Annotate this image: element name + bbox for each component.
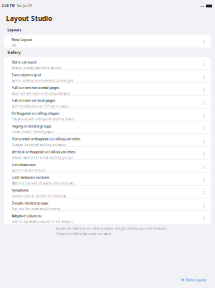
staticText: New Layout	[186, 278, 206, 282]
button[interactable]: Deeply nested groups	[4, 198, 211, 211]
staticText: 4:38 PM	[2, 4, 15, 8]
staticText: Start	[11, 44, 16, 47]
staticText: Xylophone	[11, 187, 28, 193]
staticText: Gallery	[7, 50, 20, 55]
button[interactable]: Paging in nested groups	[4, 121, 211, 134]
button[interactable]: Adaptive columns	[4, 211, 211, 224]
staticText: Create nested, friendly pages	[11, 130, 53, 134]
button[interactable]: Two column grid	[4, 70, 211, 83]
staticText: Adaptive columns	[11, 213, 41, 218]
button[interactable]: Xylophone	[4, 185, 211, 198]
staticText: Deeply nested groups	[11, 200, 48, 206]
staticText: Discover upbeat, colorful cells that pla…	[11, 194, 65, 198]
staticText: Swipe left and right in this popular lay…	[11, 92, 70, 95]
staticText: Explore lists and sections	[11, 169, 45, 172]
button[interactable]: Full screen vertical pages	[4, 96, 211, 108]
staticText: Story carousel	[11, 59, 36, 65]
staticText: Lists between sections	[11, 175, 49, 180]
staticText: Learn to dynamically respond to size cha…	[11, 220, 72, 224]
staticText: New Layout	[11, 37, 31, 42]
button[interactable]: New Layout	[178, 276, 209, 284]
staticText: Tue Jul 29	[15, 4, 32, 8]
staticText: Compare horizontal scrolling behaviors	[11, 143, 65, 147]
staticText: Horizontal orthogonal scrolling varietie…	[11, 136, 80, 141]
staticText: Explore creating a uniform multi-column …	[11, 79, 73, 83]
staticText: Two column grid	[11, 72, 40, 77]
staticText: Discover varieties of vertical scrolling…	[11, 156, 72, 159]
staticText: Orthogonal scrolling shapes	[11, 111, 59, 116]
staticText: Layout Studio	[6, 14, 52, 23]
staticText: Layouts	[7, 27, 21, 32]
staticText: Changes to Gallery layouts are not saved…	[56, 232, 112, 236]
staticText: Mastering lists with UI spacing that int…	[11, 181, 74, 185]
staticText: Arrange a visually appealing carousel	[11, 66, 61, 70]
button[interactable]: Full screen horizontal pages	[4, 83, 211, 96]
button[interactable]: Lists between sections	[4, 173, 211, 185]
button[interactable]: Orthogonal scrolling shapes	[4, 108, 211, 121]
button[interactable]: Story carousel	[4, 57, 211, 70]
staticText: Vertical orthogonal scrolling varieties	[11, 149, 75, 154]
staticText: Play around with orthogonal scrolling sh…	[11, 117, 74, 121]
staticText: Paging in nested groups	[11, 123, 51, 129]
staticText: Browse the Gallery to see what's possibl…	[56, 227, 167, 230]
button[interactable]: New Layout	[4, 35, 211, 47]
staticText: Dive into the complexity of nesting	[11, 207, 60, 211]
staticText: Scroll vertically through full screen pa…	[11, 105, 68, 108]
staticText: List showcase	[11, 162, 35, 167]
staticText: Full screen horizontal pages	[11, 85, 59, 90]
staticText: WiFi	[200, 4, 205, 8]
button[interactable]: Horizontal orthogonal scrolling varietie…	[4, 134, 211, 147]
button[interactable]: Vertical orthogonal scrolling varieties	[4, 147, 211, 160]
button[interactable]: List showcase	[4, 160, 211, 173]
staticText: Full screen vertical pages	[11, 98, 55, 103]
